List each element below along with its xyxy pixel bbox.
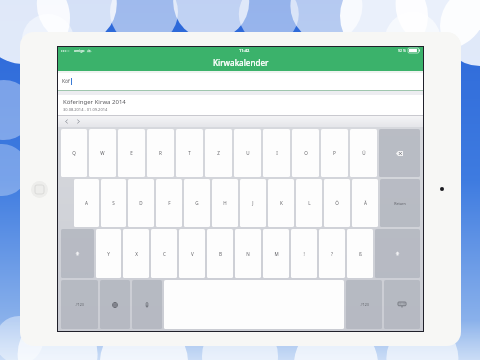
button[interactable]: Ü bbox=[350, 129, 377, 177]
button[interactable]: Ö bbox=[324, 179, 350, 227]
button[interactable]: Next field bbox=[74, 117, 83, 126]
button[interactable]: J bbox=[240, 179, 266, 227]
staticText: J bbox=[252, 200, 254, 206]
staticText: ß bbox=[359, 251, 362, 257]
staticText: ? bbox=[331, 251, 333, 257]
button[interactable]: G bbox=[184, 179, 210, 227]
button[interactable]: H bbox=[212, 179, 238, 227]
staticText: Ü bbox=[362, 150, 366, 156]
staticText: amigo bbox=[74, 48, 85, 53]
staticText: C bbox=[163, 251, 166, 257]
button[interactable]: Dictation bbox=[132, 280, 162, 329]
staticText: K bbox=[280, 200, 283, 206]
staticText: D bbox=[139, 200, 143, 206]
staticText: O bbox=[304, 150, 308, 156]
button[interactable]: Q bbox=[61, 129, 87, 177]
button[interactable]: Backspace bbox=[379, 129, 420, 177]
button[interactable]: D bbox=[128, 179, 154, 227]
button[interactable]: ß bbox=[347, 229, 373, 278]
button[interactable]: N bbox=[235, 229, 261, 278]
button[interactable]: C bbox=[151, 229, 177, 278]
button[interactable]: B bbox=[207, 229, 233, 278]
staticText: B bbox=[219, 251, 222, 257]
staticText: N bbox=[246, 251, 250, 257]
button[interactable]: K bbox=[268, 179, 294, 227]
button[interactable]: Home bbox=[31, 181, 48, 198]
staticText: Ä bbox=[364, 200, 367, 206]
staticText: Köf bbox=[62, 78, 70, 85]
staticText: T bbox=[188, 150, 191, 156]
button[interactable]: V bbox=[179, 229, 205, 278]
staticText: Ö bbox=[335, 200, 339, 206]
button[interactable]: P bbox=[321, 129, 348, 177]
button[interactable]: Change language bbox=[100, 280, 130, 329]
button[interactable]: W bbox=[89, 129, 116, 177]
button[interactable]: F bbox=[156, 179, 182, 227]
button[interactable]: U bbox=[234, 129, 261, 177]
staticText: L bbox=[308, 200, 311, 206]
button[interactable]: Köf bbox=[58, 73, 423, 90]
staticText: Return bbox=[394, 201, 406, 206]
button[interactable]: Z bbox=[205, 129, 232, 177]
button[interactable]: O bbox=[292, 129, 319, 177]
staticText: .?123 bbox=[360, 302, 369, 307]
staticText: P bbox=[333, 150, 336, 156]
button[interactable]: Hide keyboard bbox=[384, 280, 420, 329]
staticText: U bbox=[246, 150, 250, 156]
staticText: Z bbox=[217, 150, 220, 156]
button[interactable]: .?123 bbox=[61, 280, 98, 329]
button[interactable]: Previous field bbox=[62, 117, 71, 126]
staticText: ! bbox=[303, 251, 305, 257]
staticText: W bbox=[100, 150, 105, 156]
staticText: Köferinger Kirwa 2014 bbox=[63, 98, 126, 106]
staticText: Y bbox=[107, 251, 110, 257]
staticText: Kirwakalender bbox=[213, 57, 269, 68]
staticText: G bbox=[195, 200, 199, 206]
staticText: I bbox=[276, 150, 278, 156]
button[interactable]: I bbox=[263, 129, 290, 177]
staticText: .?123 bbox=[75, 302, 84, 307]
staticText: S bbox=[112, 200, 115, 206]
button[interactable]: Ä bbox=[352, 179, 378, 227]
button[interactable]: .?123 bbox=[346, 280, 382, 329]
staticText: V bbox=[191, 251, 194, 257]
button[interactable]: M bbox=[263, 229, 289, 278]
button[interactable]: ? bbox=[319, 229, 345, 278]
button[interactable]: R bbox=[147, 129, 174, 177]
staticText: H bbox=[223, 200, 227, 206]
staticText: X bbox=[135, 251, 138, 257]
staticText: 92 % bbox=[398, 48, 406, 53]
staticText: F bbox=[168, 200, 171, 206]
staticText: 11:42 bbox=[239, 48, 250, 53]
button[interactable]: Y bbox=[96, 229, 121, 278]
button[interactable]: Return bbox=[380, 179, 420, 227]
staticText: A bbox=[85, 200, 88, 206]
staticText: 30.08.2014 - 01.09.2014 bbox=[63, 107, 108, 112]
button[interactable]: E bbox=[118, 129, 145, 177]
staticText: R bbox=[159, 150, 162, 156]
button[interactable]: X bbox=[123, 229, 149, 278]
button[interactable]: Köferinger Kirwa 2014 bbox=[58, 95, 423, 115]
staticText: Q bbox=[72, 150, 76, 156]
button[interactable]: T bbox=[176, 129, 203, 177]
button[interactable]: Shift bbox=[61, 229, 94, 278]
button[interactable]: A bbox=[74, 179, 99, 227]
staticText: E bbox=[130, 150, 133, 156]
button[interactable]: L bbox=[296, 179, 322, 227]
button[interactable]: S bbox=[101, 179, 126, 227]
staticText: M bbox=[274, 251, 279, 257]
